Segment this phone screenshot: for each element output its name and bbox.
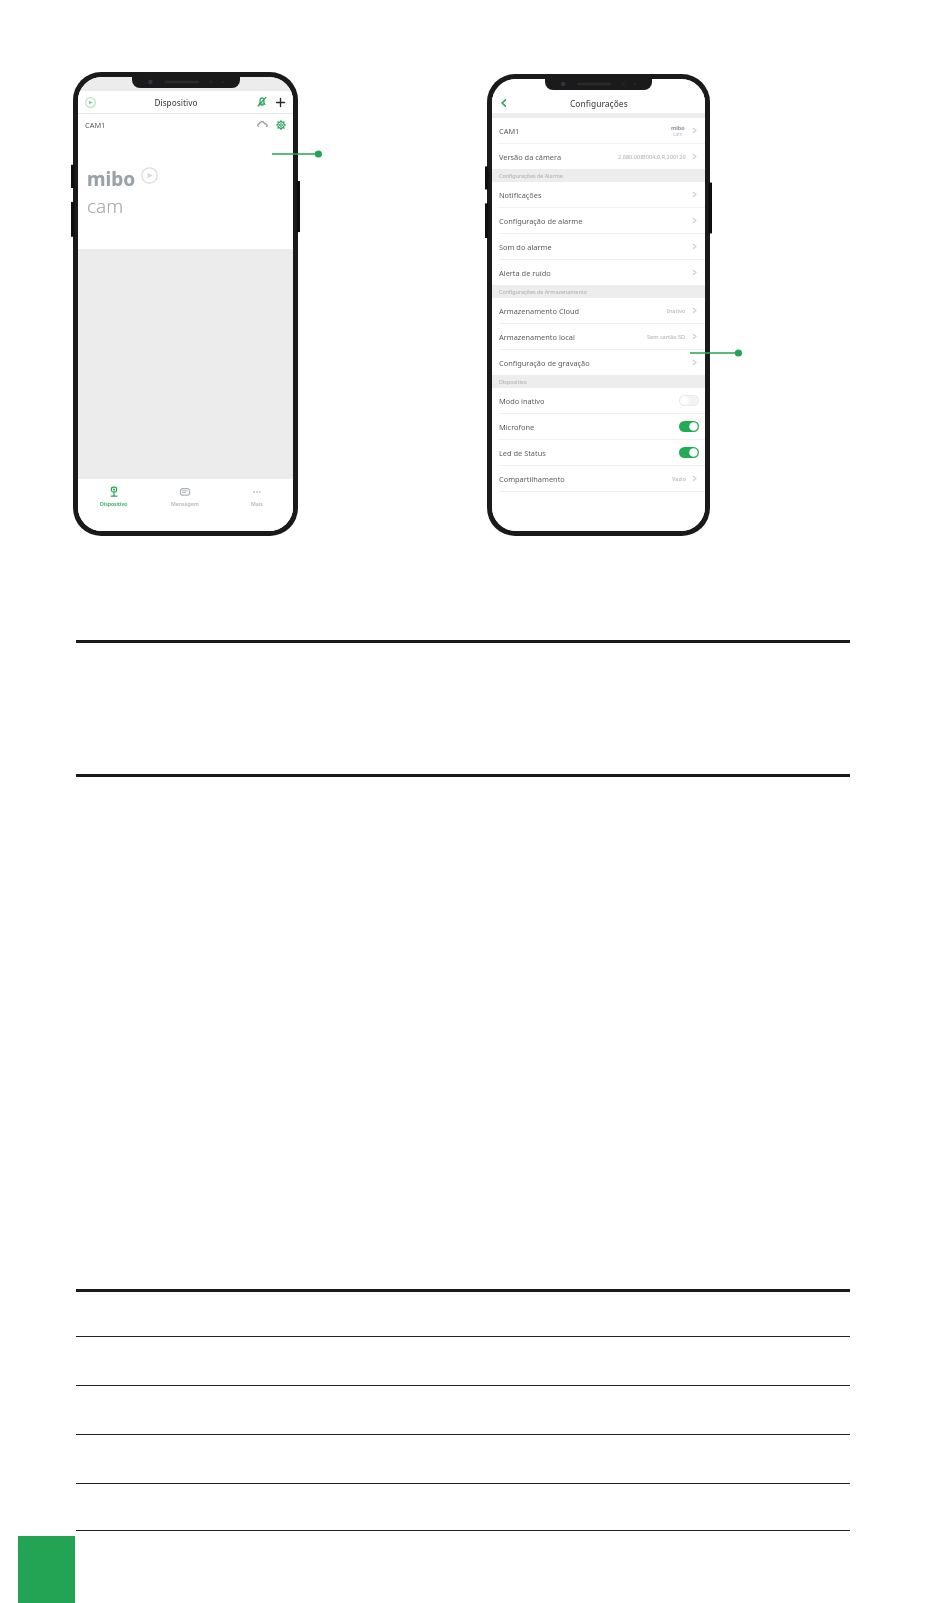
button[interactable]: Mais bbox=[221, 479, 293, 513]
button[interactable]: Armazenamento Cloud bbox=[492, 298, 705, 323]
staticText: Notificações bbox=[499, 190, 542, 200]
staticText: cam bbox=[673, 131, 683, 138]
staticText: Alerta de ruído bbox=[499, 268, 551, 278]
button[interactable]: Back bbox=[498, 97, 510, 109]
button[interactable]: Configuração de alarme bbox=[492, 208, 705, 233]
staticText: Led de Status bbox=[499, 448, 546, 458]
staticText: Compartilhamento bbox=[499, 474, 565, 484]
button[interactable]: Mensagem bbox=[149, 479, 221, 513]
button[interactable]: Microfone bbox=[492, 414, 705, 439]
staticText: Inativo bbox=[667, 307, 686, 315]
button[interactable]: Versão da câmera bbox=[492, 144, 705, 169]
staticText: Armazenamento Cloud bbox=[499, 306, 580, 316]
staticText: Dispositivo bbox=[96, 97, 256, 108]
button[interactable]: Settings bbox=[276, 120, 286, 130]
button[interactable]: Armazenamento local bbox=[492, 324, 705, 349]
staticText: mibo bbox=[87, 166, 136, 192]
staticText: Modo inativo bbox=[499, 396, 545, 406]
staticText: CAM1 bbox=[499, 126, 520, 136]
staticText: Mais bbox=[251, 500, 263, 507]
staticText: Armazenamento local bbox=[499, 332, 575, 342]
staticText: Dispositivo bbox=[499, 378, 527, 385]
button[interactable]: Modo inativo bbox=[492, 388, 705, 413]
button[interactable]: Cloud storage bbox=[257, 119, 268, 130]
staticText: Microfone bbox=[499, 422, 535, 432]
staticText: cam bbox=[87, 193, 124, 219]
button[interactable]: Mute notifications bbox=[256, 96, 268, 108]
button[interactable]: Alerta de ruído bbox=[492, 260, 705, 285]
staticText: 2.680.00IB004.0.R.200120 bbox=[618, 153, 686, 161]
button[interactable]: Notificações bbox=[492, 182, 705, 207]
button[interactable]: Som do alarme bbox=[492, 234, 705, 259]
staticText: Sem cartão SD bbox=[647, 333, 686, 341]
staticText: Versão da câmera bbox=[499, 152, 562, 162]
button[interactable]: Add device bbox=[275, 97, 286, 108]
button[interactable]: Dispositivo bbox=[78, 479, 149, 513]
staticText: Configuração de gravação bbox=[499, 358, 590, 368]
button[interactable]: Led de Status bbox=[492, 440, 705, 465]
staticText: mibo bbox=[671, 124, 685, 131]
staticText: Configurações de Alarme bbox=[499, 172, 563, 179]
staticText: Dispositivo bbox=[100, 500, 128, 507]
staticText: Configurações bbox=[570, 98, 628, 109]
staticText: Vazio bbox=[672, 475, 686, 483]
button[interactable]: Configuração de gravação bbox=[492, 350, 705, 375]
button[interactable]: CAM1 bbox=[492, 118, 705, 143]
staticText: Som do alarme bbox=[499, 242, 552, 252]
staticText: Configuração de alarme bbox=[499, 216, 583, 226]
button[interactable]: Play bbox=[85, 97, 96, 108]
staticText: CAM1 bbox=[85, 120, 106, 130]
staticText: Mensagem bbox=[171, 500, 199, 507]
staticText: Configurações de Armazenamento bbox=[499, 288, 587, 295]
button[interactable]: Compartilhamento bbox=[492, 466, 705, 491]
button[interactable]: mibo bbox=[78, 135, 293, 249]
